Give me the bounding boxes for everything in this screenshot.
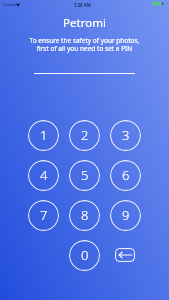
button[interactable]: 2 [69,120,100,151]
staticText: To ensure the safety of your photos, fir… [0,36,169,53]
staticText: 4 [40,166,48,184]
button[interactable]: 4 [28,160,59,191]
staticText: Carrier [3,2,17,7]
button[interactable]: 7 [28,200,59,231]
staticText: 0 [81,246,89,264]
button[interactable]: Backspace [110,240,141,271]
staticText: 9 [122,206,130,224]
staticText: Petromi [0,15,169,31]
button[interactable]: 6 [110,160,141,191]
button[interactable]: 5 [69,160,100,191]
staticText: 7 [40,206,48,224]
button[interactable]: 9 [110,200,141,231]
button[interactable]: 8 [69,200,100,231]
staticText: 2 [81,126,89,144]
staticText: 3 [122,126,130,144]
staticText: 8 [81,206,89,224]
staticText: 3:28 AM [74,2,91,8]
staticText: 5 [81,166,89,184]
button[interactable]: 3 [110,120,141,151]
button[interactable]: 1 [28,120,59,151]
button[interactable]: 0 [69,240,100,271]
staticText: 6 [122,166,130,184]
staticText: 1 [40,126,48,144]
